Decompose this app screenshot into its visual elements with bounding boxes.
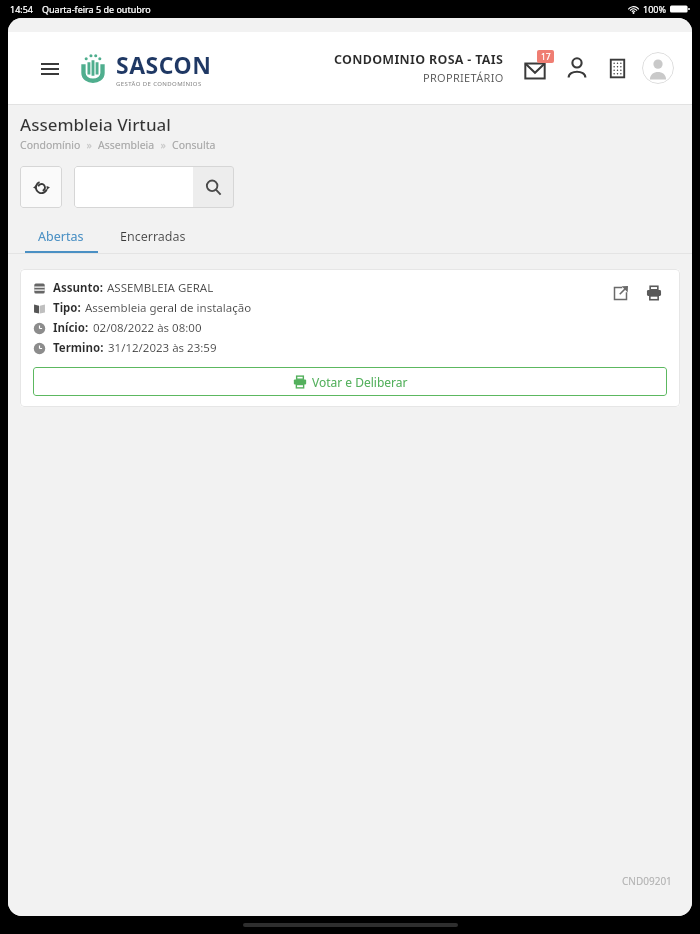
button[interactable]: CONDOMINIO ROSA - TAIS xyxy=(334,51,504,85)
button[interactable]: Votar e Deliberar xyxy=(33,367,667,396)
button[interactable]: Abrir xyxy=(607,280,633,306)
staticText: 02/08/2022 às 08:00 xyxy=(93,320,202,336)
button[interactable]: Menu xyxy=(38,57,62,81)
staticText: Encerradas xyxy=(120,228,186,245)
staticText: Tipo: xyxy=(53,300,81,316)
staticText: Abertas xyxy=(38,228,84,245)
button[interactable]: Perfil xyxy=(642,52,674,84)
button[interactable]: Imprimir xyxy=(641,280,667,306)
staticText: GESTÃO DE CONDOMÍNIOS xyxy=(116,80,202,88)
staticText: Quarta-feira 5 de outubro xyxy=(42,3,151,15)
staticText: » xyxy=(81,138,98,152)
staticText: » xyxy=(155,138,172,152)
staticText: Votar e Deliberar xyxy=(312,374,408,390)
staticText: CND09201 xyxy=(622,874,672,888)
staticText: Assembleia geral de instalação xyxy=(85,300,252,316)
staticText: SASCON xyxy=(116,49,212,80)
staticText: Termino: xyxy=(53,340,104,356)
staticText: 14:54 xyxy=(10,3,34,15)
button[interactable]: Mensagens xyxy=(518,51,552,85)
staticText: Consulta xyxy=(172,138,216,152)
button[interactable]: Condomínio xyxy=(602,53,632,83)
staticText: 100% xyxy=(643,3,666,15)
staticText: Assembleia Virtual xyxy=(20,113,171,136)
staticText: Assembleia xyxy=(98,138,155,152)
button[interactable]: Abertas xyxy=(20,222,102,253)
staticText: 17 xyxy=(541,51,551,63)
staticText: ASSEMBLEIA GERAL xyxy=(107,280,214,296)
button[interactable]: Usuário xyxy=(562,53,592,83)
staticText: Início: xyxy=(53,320,89,336)
staticText: 31/12/2023 às 23:59 xyxy=(108,340,217,356)
staticText: Assunto: xyxy=(53,280,103,296)
staticText: PROPRIETÁRIO xyxy=(423,70,504,85)
button[interactable]: Pesquisar xyxy=(193,166,234,208)
staticText: CONDOMINIO ROSA - TAIS xyxy=(334,51,504,68)
staticText: Condomínio xyxy=(20,138,81,152)
button[interactable]: Encerradas xyxy=(102,222,204,253)
button[interactable]: Atualizar xyxy=(20,166,62,208)
